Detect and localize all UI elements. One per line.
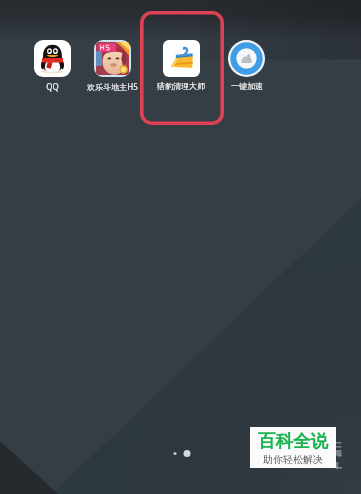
staticText: 欢乐斗地主H5: [87, 81, 138, 92]
staticText: 猎豹清理大师: [157, 81, 205, 91]
button[interactable]: 一键加速: [215, 36, 277, 94]
button[interactable]: QQ: [21, 36, 83, 94]
button[interactable]: 百科全说: [250, 427, 336, 468]
button[interactable]: 欢乐斗地主H5: [81, 36, 143, 94]
staticText: QQ: [46, 81, 59, 92]
staticText: 助你轻松解决: [263, 453, 323, 466]
button[interactable]: 猎豹清理大师: [150, 36, 212, 94]
button[interactable]: Page indicator: [168, 446, 198, 462]
staticText: 一键加速: [231, 81, 263, 91]
staticText: 百科全说: [258, 430, 328, 452]
